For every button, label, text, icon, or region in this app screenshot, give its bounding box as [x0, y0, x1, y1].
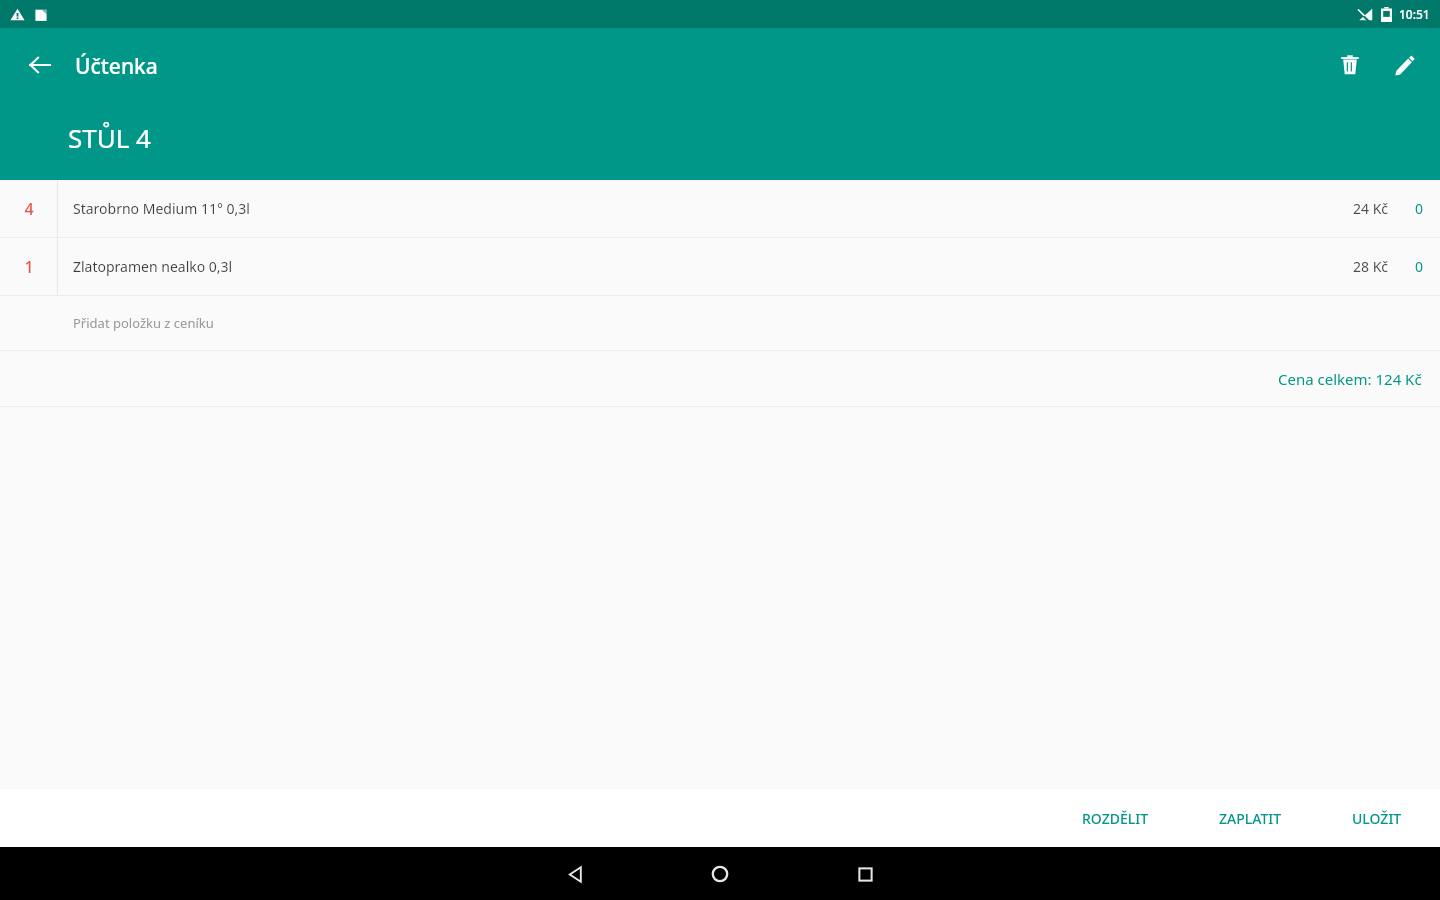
button[interactable]: ROZDĚLIT — [1066, 797, 1165, 840]
staticText: 24 Kč — [1353, 199, 1389, 218]
button[interactable]: 4 — [0, 180, 1440, 237]
button[interactable]: Recent apps — [841, 850, 889, 898]
button[interactable]: 1 — [0, 238, 1440, 295]
button[interactable]: Edit — [1380, 41, 1428, 89]
staticText: ZAPLATIT — [1219, 809, 1282, 828]
staticText: Přidat položku z ceníku — [73, 314, 214, 332]
staticText: STŮL 4 — [68, 120, 151, 155]
staticText: 1 — [24, 256, 34, 278]
button[interactable]: ZAPLATIT — [1203, 797, 1298, 840]
button[interactable]: Back — [551, 850, 599, 898]
staticText: ROZDĚLIT — [1082, 809, 1149, 828]
staticText: Účtenka — [75, 52, 158, 81]
button[interactable]: Delete — [1326, 41, 1374, 89]
staticText: Cena celkem: 124 Kč — [1278, 369, 1422, 389]
staticText: 0 — [1415, 199, 1424, 218]
staticText: 0 — [1415, 257, 1424, 276]
staticText: 10:51 — [1399, 6, 1430, 22]
button[interactable]: Přidat položku z ceníku — [0, 296, 1440, 350]
staticText: 4 — [24, 198, 34, 220]
staticText: 28 Kč — [1353, 257, 1389, 276]
button[interactable]: ULOŽIT — [1336, 797, 1418, 840]
staticText: Zlatopramen nealko 0,3l — [73, 257, 233, 276]
button[interactable]: Back — [16, 41, 64, 89]
staticText: Starobrno Medium 11° 0,3l — [73, 199, 250, 218]
button[interactable]: Home — [696, 850, 744, 898]
staticText: ULOŽIT — [1352, 809, 1402, 828]
